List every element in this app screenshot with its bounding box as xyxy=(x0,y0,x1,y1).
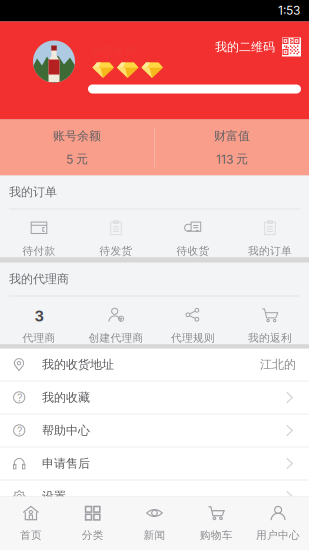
staticText: 待发货 xyxy=(99,244,132,258)
staticText: 用户中心 xyxy=(256,528,300,542)
button[interactable]: 待收货 xyxy=(154,209,231,257)
button[interactable]: 待发货 xyxy=(77,209,154,257)
staticText: 我的返利 xyxy=(248,331,292,345)
button[interactable]: 财富值 xyxy=(155,119,309,175)
staticText: 1:53 xyxy=(278,3,300,18)
button[interactable]: 我的订单 xyxy=(231,209,308,257)
button[interactable]: 我的收货地址 xyxy=(0,348,309,381)
staticText: 财富值 xyxy=(214,128,250,143)
button[interactable]: 账号余额 xyxy=(0,119,154,175)
staticText: 购物车 xyxy=(200,528,233,542)
staticText: 113 元 xyxy=(216,151,248,167)
button[interactable]: 待付款 xyxy=(0,209,77,257)
staticText: 帮助中心 xyxy=(42,423,90,438)
button[interactable]: 首页 xyxy=(0,496,62,550)
staticText: 我的订单 xyxy=(9,184,57,199)
staticText: 我的收藏 xyxy=(42,390,90,405)
staticText: 首页 xyxy=(20,528,42,542)
staticText: 代理商 xyxy=(22,331,55,345)
button[interactable]: 新闻 xyxy=(124,496,185,550)
staticText: ? xyxy=(17,391,22,404)
button[interactable]: 我的二维码 xyxy=(215,21,309,56)
staticText: 待收货 xyxy=(176,244,209,258)
staticText: 创建代理商 xyxy=(88,331,143,345)
staticText: 代理规则 xyxy=(171,331,215,345)
button[interactable]: ? xyxy=(0,381,309,414)
staticText: 我的收货地址 xyxy=(42,357,114,372)
staticText: ? xyxy=(17,424,22,437)
staticText: 我的订单 xyxy=(248,244,292,258)
staticText: 申请售后 xyxy=(42,456,90,471)
button[interactable]: 设置 xyxy=(0,480,309,513)
button[interactable]: 创建代理商 xyxy=(77,296,154,344)
button[interactable]: 用户中心 xyxy=(247,496,309,550)
staticText: 新闻 xyxy=(143,528,165,542)
button[interactable]: 我的返利 xyxy=(231,296,308,344)
button[interactable]: 购物车 xyxy=(185,496,247,550)
staticText: 我的代理商 xyxy=(9,271,69,286)
staticText: 3 xyxy=(34,307,43,325)
button[interactable]: ? xyxy=(0,414,309,447)
staticText: 账号余额 xyxy=(53,128,101,143)
button[interactable]: 申请售后 xyxy=(0,447,309,480)
staticText: 5 元 xyxy=(66,151,88,167)
staticText: 我的二维码 xyxy=(215,39,275,54)
staticText: 分类 xyxy=(82,528,104,542)
button[interactable]: 分类 xyxy=(62,496,124,550)
staticText: 待付款 xyxy=(22,244,55,258)
button[interactable]: 代理规则 xyxy=(154,296,231,344)
button[interactable]: 3 xyxy=(0,296,77,344)
staticText: 设置 xyxy=(42,489,66,504)
staticText: 江北的 xyxy=(260,357,296,372)
